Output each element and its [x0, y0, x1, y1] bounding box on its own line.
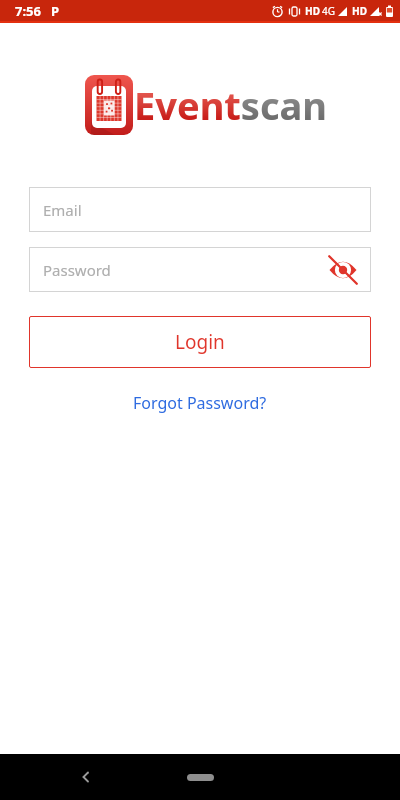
staticText: HD	[352, 4, 367, 18]
staticText: 4G	[322, 4, 335, 18]
staticText: Password	[43, 260, 111, 280]
staticText: HD	[305, 4, 320, 18]
button[interactable]	[328, 255, 358, 285]
button[interactable]: Forgot Password?	[133, 392, 267, 414]
button[interactable]	[72, 763, 100, 791]
staticText: Email	[43, 200, 82, 220]
staticText: 7:56	[15, 2, 41, 20]
staticText: Login	[175, 329, 225, 355]
button[interactable]: Login	[29, 316, 371, 368]
staticText: Eventscan	[134, 79, 328, 131]
button[interactable]: Password	[29, 247, 371, 292]
button[interactable]: Email	[29, 187, 371, 232]
staticText: P	[51, 2, 60, 20]
button[interactable]	[187, 774, 214, 781]
staticText: Forgot Password?	[133, 392, 267, 414]
